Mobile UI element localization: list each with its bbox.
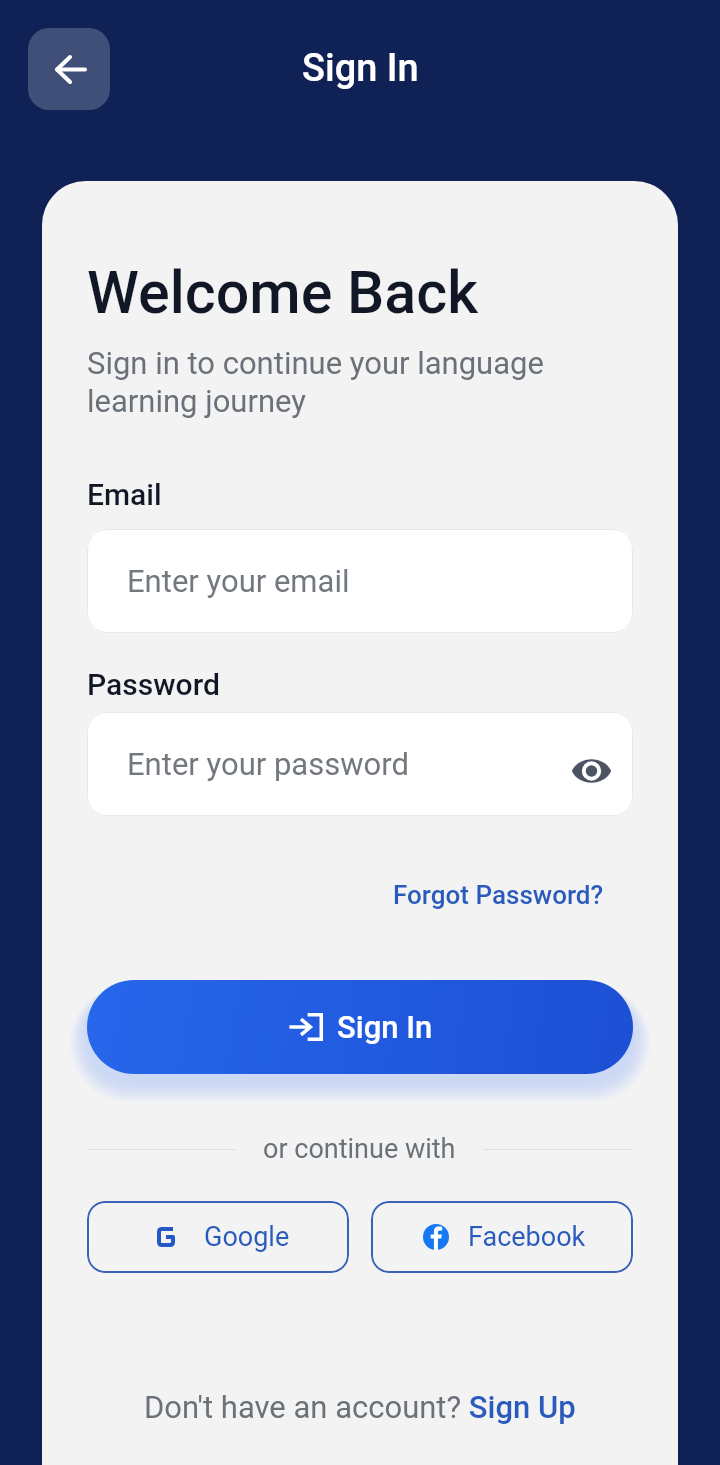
staticText: Facebook (468, 1221, 586, 1253)
staticText: or continue with (263, 1133, 456, 1165)
staticText: Password (87, 667, 220, 702)
staticText: Enter your password (127, 746, 409, 782)
button[interactable]: Don't have an account? Sign Up (87, 1389, 633, 1425)
staticText: Forgot Password? (393, 880, 604, 910)
button[interactable]: Google (87, 1201, 349, 1273)
staticText: Sign In (302, 46, 419, 91)
button[interactable]: Sign In (87, 980, 633, 1074)
button[interactable]: Enter your email (87, 529, 633, 633)
staticText: Don't have an account? Sign Up (144, 1389, 576, 1425)
staticText: Welcome Back (87, 258, 478, 327)
button[interactable]: Forgot Password? (393, 880, 633, 910)
staticText: Sign in to continue your language learni… (87, 345, 633, 420)
staticText: Email (87, 477, 162, 512)
button[interactable]: Facebook (371, 1201, 633, 1273)
staticText: Google (204, 1221, 290, 1253)
button[interactable]: Back (28, 28, 110, 110)
button[interactable]: Enter your password (87, 712, 633, 816)
staticText: Sign In (337, 1009, 433, 1045)
button[interactable]: Show password (566, 746, 616, 796)
staticText: Enter your email (127, 563, 350, 599)
